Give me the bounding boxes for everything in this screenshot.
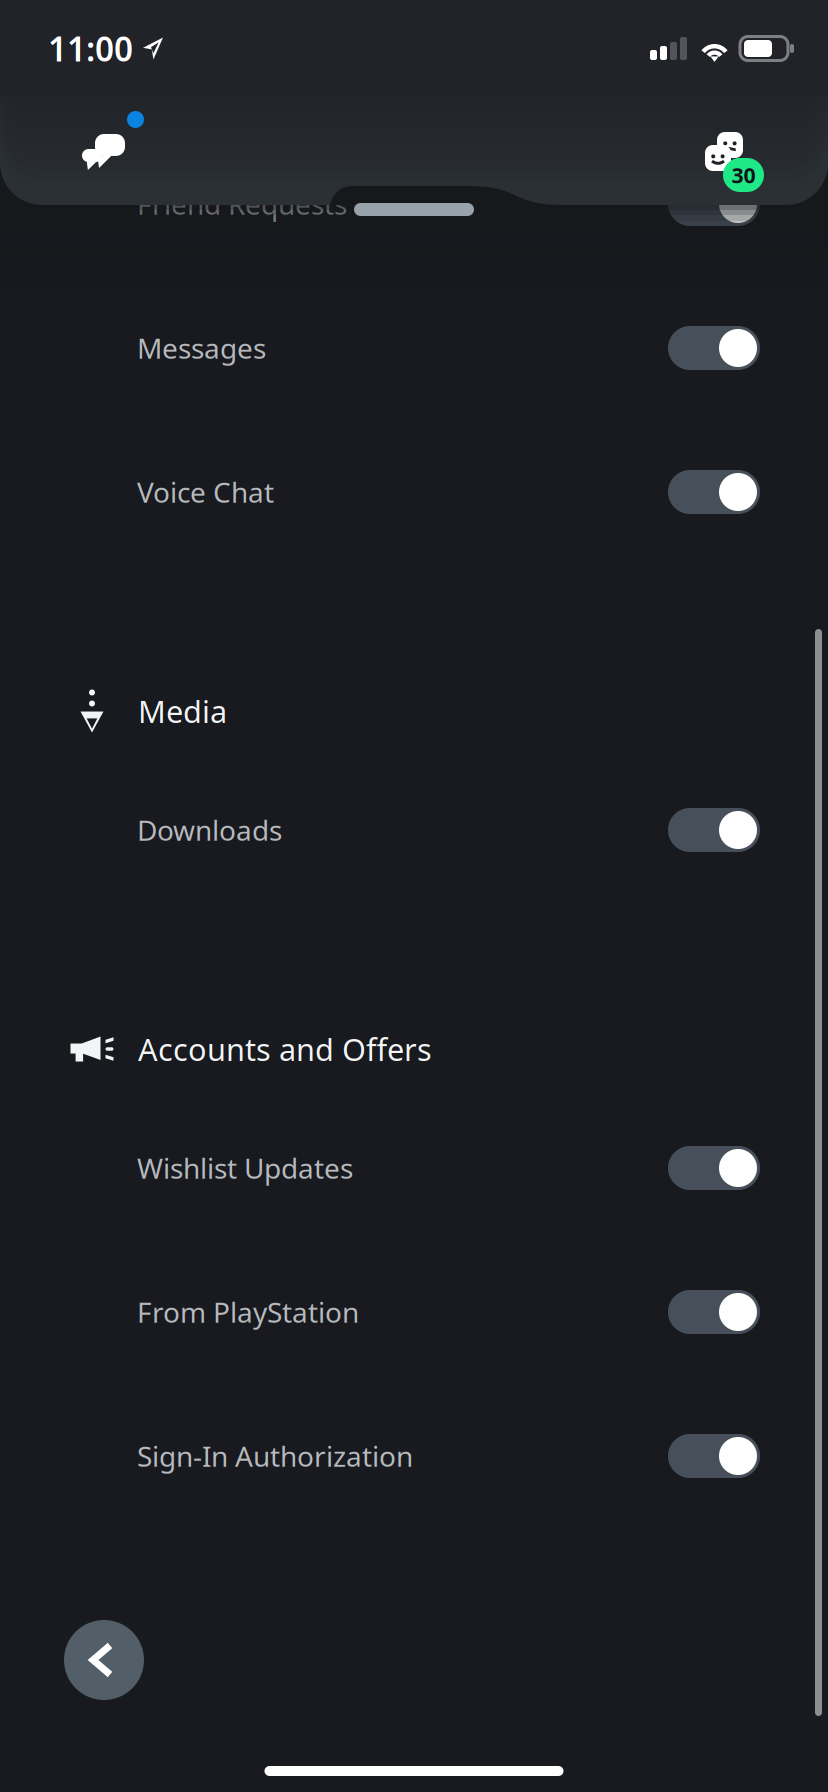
button[interactable]: Downloads [0,758,828,902]
button[interactable]: Sign-In Authorization [0,1384,828,1528]
staticText: 11:00 [48,26,133,71]
button[interactable]: From PlayStation [0,1240,828,1384]
button[interactable]: Friends, 30 new [705,105,764,192]
button[interactable]: Back [64,1620,144,1700]
staticText: 30 [731,161,755,189]
button[interactable]: Messages [0,276,828,420]
button[interactable]: Wishlist Updates [0,1096,828,1240]
staticText: Voice Chat [137,473,274,511]
staticText: Friend Requests [137,185,347,223]
staticText: Messages [137,329,266,367]
staticText: Downloads [137,811,282,849]
staticText: Accounts and Offers [138,1029,432,1069]
button[interactable]: Voice Chat [0,420,828,564]
button[interactable]: Messages [82,105,144,179]
staticText: Media [138,691,227,731]
staticText: From PlayStation [137,1293,359,1331]
staticText: Wishlist Updates [137,1149,353,1187]
staticText: Sign-In Authorization [137,1437,413,1475]
button[interactable]: Friend Requests [0,132,828,276]
